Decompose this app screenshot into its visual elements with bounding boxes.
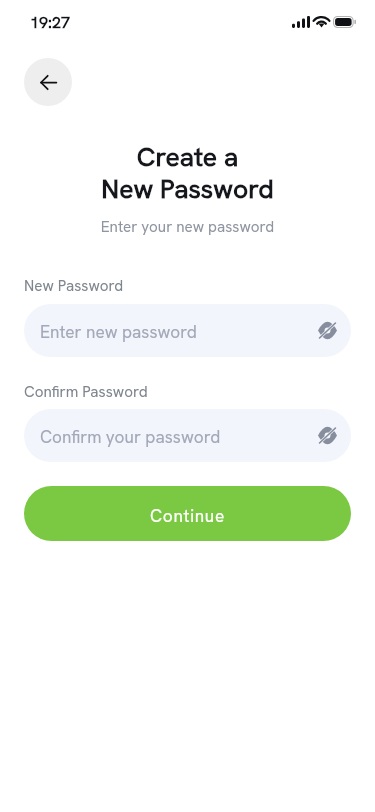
staticText: New Password [24, 276, 124, 296]
staticText: Enter new password [40, 321, 197, 343]
staticText: Enter your new password [0, 217, 375, 237]
staticText: Confirm your password [40, 426, 221, 448]
button[interactable]: Continue [24, 486, 351, 541]
button[interactable]: Confirm your password [24, 409, 351, 462]
button[interactable]: Back [24, 58, 72, 106]
staticText: Continue [150, 505, 225, 527]
staticText: Create a New Password [0, 140, 375, 206]
button[interactable]: Show password [316, 424, 338, 446]
staticText: Confirm Password [24, 382, 148, 402]
button[interactable]: Show password [316, 319, 338, 341]
staticText: 19:27 [30, 12, 70, 33]
button[interactable]: Enter new password [24, 304, 351, 357]
